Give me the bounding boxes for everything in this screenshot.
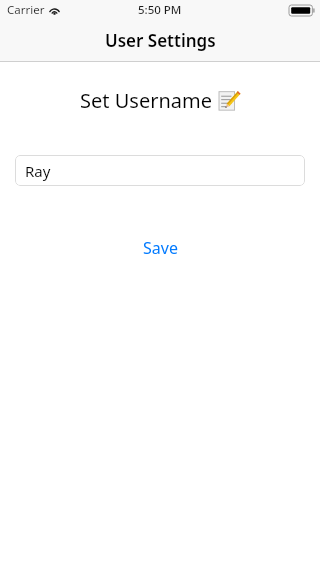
staticText: Carrier — [7, 2, 45, 18]
button[interactable]: Ray — [15, 155, 305, 186]
staticText: 5:50 PM — [138, 2, 182, 18]
staticText: User Settings — [105, 29, 216, 52]
staticText: Ray — [25, 161, 51, 181]
staticText: Set Username — [80, 87, 212, 114]
staticText: Save — [143, 237, 178, 259]
button[interactable]: Save — [133, 234, 188, 262]
